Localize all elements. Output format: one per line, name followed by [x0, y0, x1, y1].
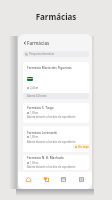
button[interactable]: Home: [21, 174, 36, 185]
button[interactable]: Ver mapa: [73, 144, 89, 149]
staticText: Aberta durante o horário de expediente: [27, 115, 76, 119]
button[interactable]: Farmácia Maria dos Figueiras: [23, 62, 89, 99]
button[interactable]: Back: [21, 39, 29, 47]
staticText: Ver mapa: [78, 145, 89, 149]
staticText: 1,8 km: [30, 161, 39, 165]
staticText: 1,8 km: [30, 135, 39, 139]
staticText: Aberta durante o horário de expediente: [27, 140, 76, 144]
button[interactable]: Farmácia N. B. Machado: [23, 155, 89, 170]
staticText: Farmácias: [0, 11, 112, 22]
staticText: Farmácias: [27, 40, 50, 46]
staticText: Aberta: [27, 77, 33, 81]
staticText: Farmácia Maria dos Figueiras: [27, 66, 72, 70]
staticText: Aberta 24 horas: [27, 94, 47, 98]
button[interactable]: Menu: [74, 174, 89, 185]
staticText: Pesquisar farmácia: [29, 52, 55, 56]
staticText: 1,8 km: [30, 111, 39, 115]
button[interactable]: Farmácia Lorenzetti: [23, 126, 89, 152]
staticText: Aberta durante o horário de expediente: [27, 165, 76, 169]
staticText: Farmácia N. B. Machado: [27, 156, 64, 160]
staticText: Farmácia S. Tiago: [27, 106, 54, 110]
button[interactable]: Farmácia S. Tiago: [23, 103, 89, 123]
staticText: Farmácia Lorenzetti: [27, 131, 58, 135]
button[interactable]: Pesquisar farmácia: [23, 51, 89, 57]
button[interactable]: Alerts: [39, 174, 54, 185]
button[interactable]: Orders: [56, 174, 71, 185]
button[interactable]: Aberta 24 horas: [23, 93, 89, 99]
staticText: 2,4 km: [30, 86, 39, 90]
